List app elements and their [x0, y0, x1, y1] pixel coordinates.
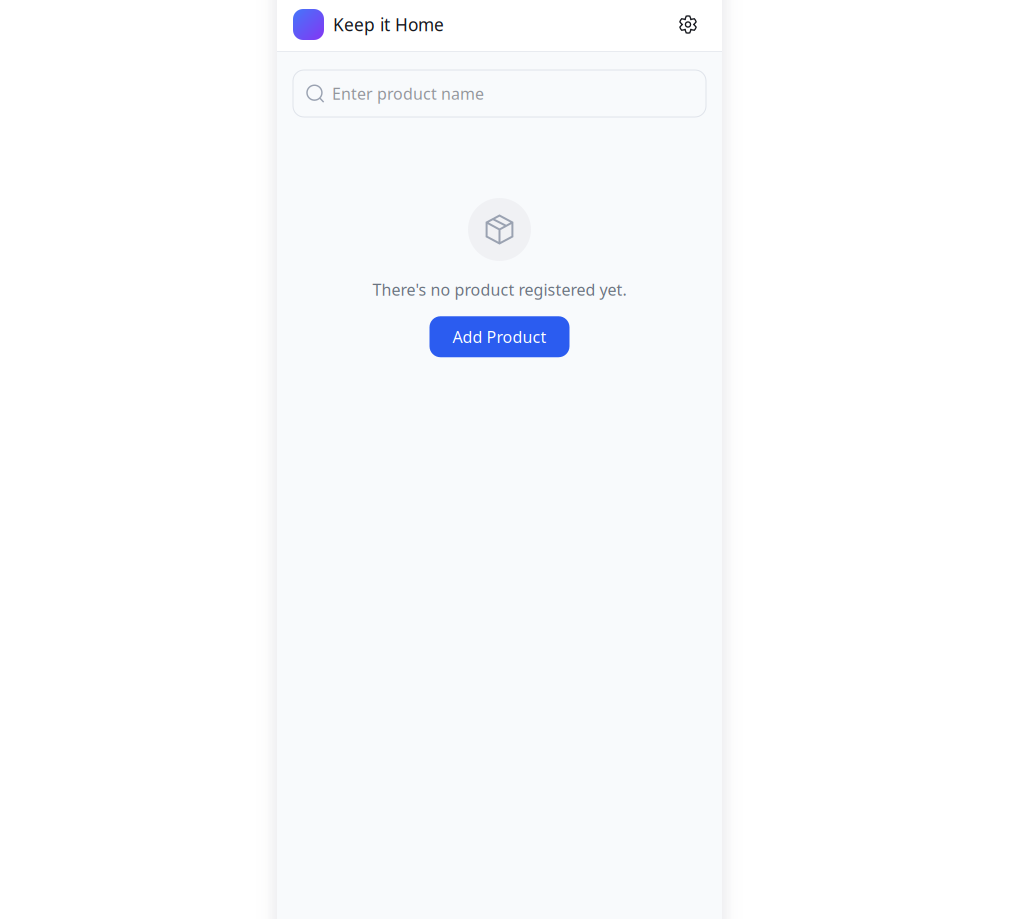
button[interactable]: Add Product [429, 316, 569, 357]
staticText: Add Product [452, 326, 546, 347]
button[interactable]: Settings [670, 6, 706, 42]
staticText: There's no product registered yet. [372, 279, 626, 300]
staticText: Enter product name [332, 83, 484, 104]
button[interactable]: Enter product name [293, 70, 706, 117]
staticText: Keep it Home [333, 13, 444, 36]
